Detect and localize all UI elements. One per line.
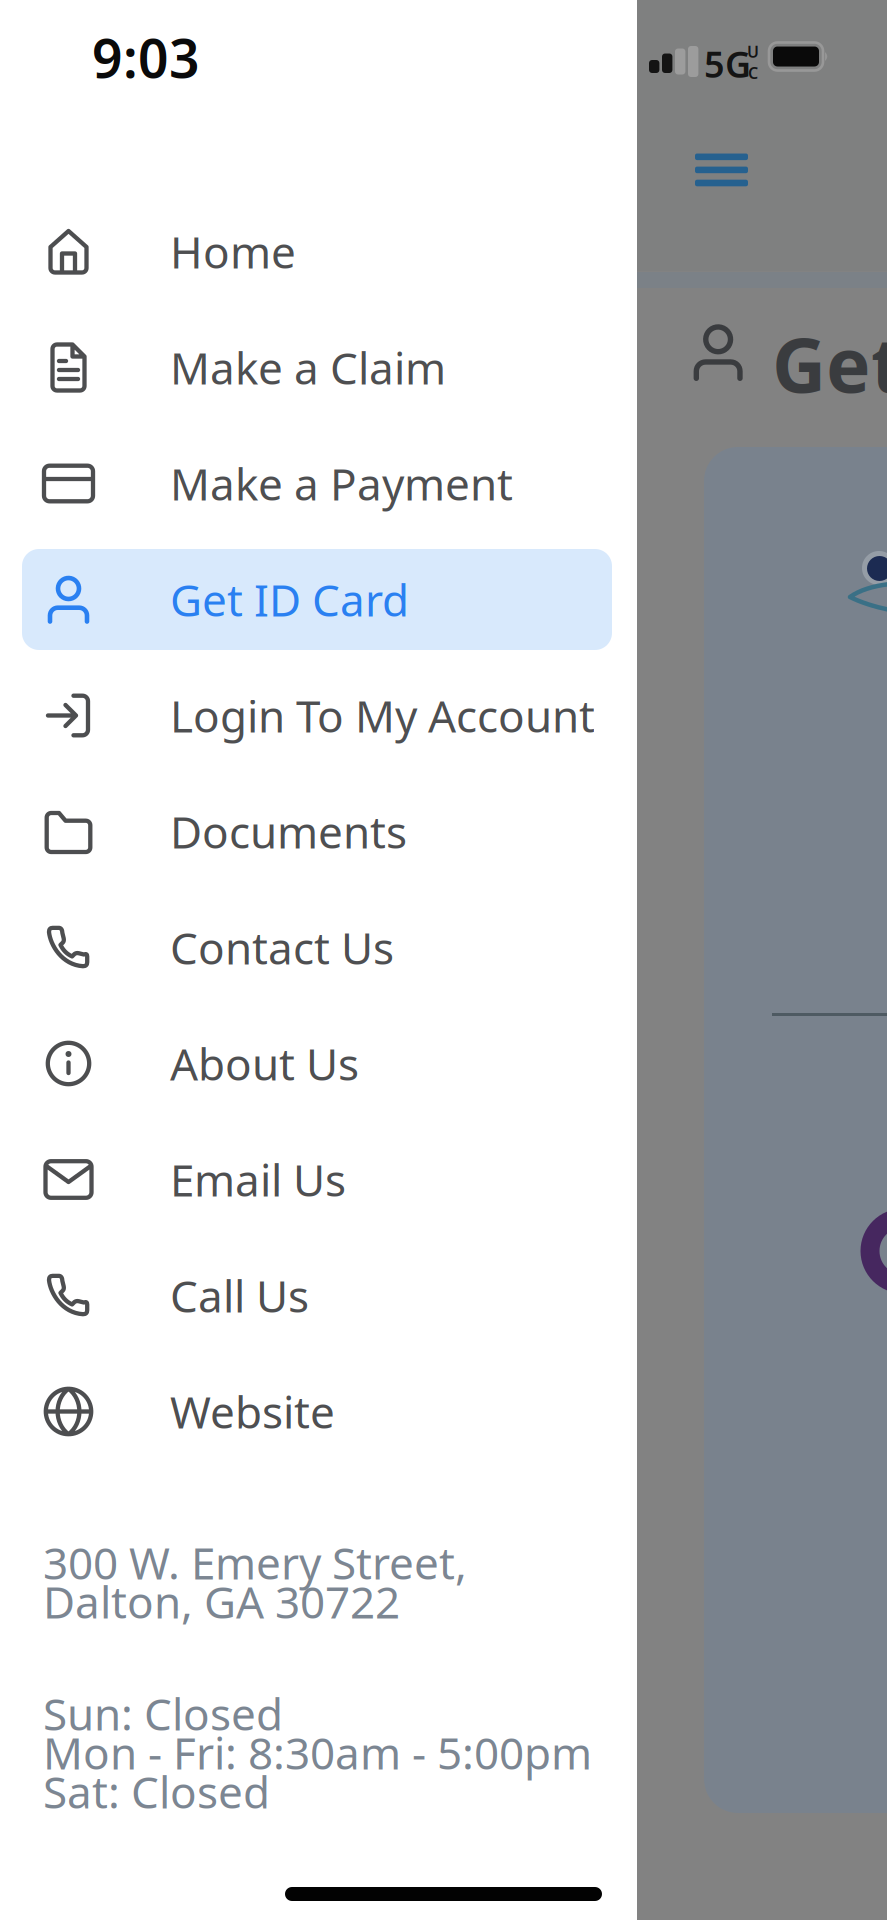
button[interactable]: Email Us [22,1129,612,1230]
staticText: Email Us [170,1150,346,1209]
staticText: 300 W. Emery Street, [43,1533,467,1592]
staticText: Get ID Card [772,314,887,413]
staticText: Contact Us [170,918,394,977]
button[interactable]: About Us [22,1013,612,1114]
staticText: Sun: Closed [43,1684,283,1743]
button[interactable]: Home [22,201,612,302]
staticText: Make a Claim [170,338,446,397]
staticText: C [748,62,758,83]
button[interactable]: Call Us [22,1245,612,1346]
button[interactable]: Contact Us [22,897,612,998]
button[interactable]: Login To My Account [22,665,612,766]
staticText: 9:03 [92,22,200,93]
staticText: Home [170,222,296,281]
staticText: Make a Payment [170,454,513,513]
button[interactable]: Make a Claim [22,317,612,418]
staticText: Call Us [170,1266,309,1325]
staticText: Dalton, GA 30722 [43,1572,400,1631]
button[interactable]: Get ID Card [22,549,612,650]
staticText: Documents [170,802,407,861]
staticText: U [747,41,759,62]
staticText: Login To My Account [170,686,595,745]
button[interactable]: Menu [695,153,748,186]
staticText: Mon - Fri: 8:30am - 5:00pm [43,1723,592,1782]
staticText: Sat: Closed [43,1762,270,1821]
button[interactable]: Website [22,1361,612,1462]
staticText: Website [170,1382,335,1441]
staticText: 5G [704,40,751,88]
button[interactable]: Make a Payment [22,433,612,534]
button[interactable]: Documents [22,781,612,882]
staticText: Get ID Card [170,570,409,629]
staticText: About Us [170,1034,359,1093]
